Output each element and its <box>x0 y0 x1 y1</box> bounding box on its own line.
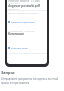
staticText: С уважением, Николай <box>8 29 35 32</box>
staticText: Подписать документ <box>11 20 36 23</box>
staticText: Отправляйте документы на подпись по emai… <box>1 77 62 85</box>
staticText: dogovor-postavki.pdf <box>8 4 41 8</box>
staticText: 12 мая <box>31 0 40 3</box>
button[interactable]: Ответить всем <box>8 46 28 49</box>
staticText: подписан <box>8 7 20 10</box>
staticText: Компания <box>8 32 24 36</box>
staticText: Николай Иванов <box>8 0 30 3</box>
button[interactable]: Подписать документ <box>8 20 36 23</box>
staticText: кому: мне <box>8 1 20 4</box>
staticText: Ответить всем <box>11 46 28 49</box>
staticText: Здравствуйте! Направляю <box>8 11 39 14</box>
staticText: Отправлено <box>8 8 23 11</box>
staticText: Запрос <box>1 70 15 75</box>
